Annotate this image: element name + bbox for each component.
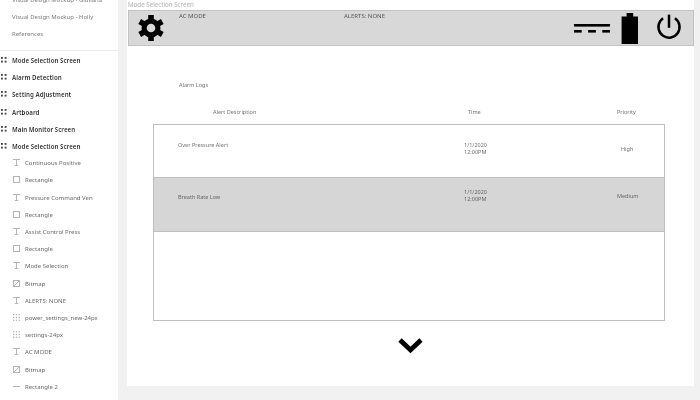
staticText: Breath Rate Low [178,193,221,200]
staticText: Rectangle 2 [25,383,58,391]
staticText: Time [468,108,481,115]
staticText: Assist Control Press [25,228,81,236]
staticText: Pressure Command Ven [25,194,93,202]
button[interactable]: Pressure line [574,22,610,34]
staticText: Alert Description [213,108,257,115]
button[interactable] [153,178,665,231]
staticText: Priority [617,108,636,115]
staticText: High [621,145,634,152]
staticText: 12:00PM [464,148,487,155]
button[interactable]: Assist Control Press [0,223,118,240]
button[interactable]: Bitmap [0,361,118,378]
staticText: AC MODE [179,12,206,20]
staticText: Alarm Logs [179,81,209,88]
staticText: Rectangle [25,211,53,219]
button[interactable]: References [0,25,118,42]
staticText: Continuous Positive [25,159,81,167]
staticText: Visual Design Mockup - Giuliana [12,0,103,4]
button[interactable]: ALERTS: NONE [0,292,118,309]
staticText: settings-24px [25,331,63,339]
staticText: Over Pressure Alert [178,141,229,148]
staticText: ALERTS: NONE [25,297,66,305]
button[interactable]: Settings [138,15,164,41]
button[interactable]: Artboard [0,103,118,120]
button[interactable]: Bitmap [0,275,118,292]
staticText: ALERTS: NONE [344,12,385,20]
button[interactable]: AC MODE [0,343,118,360]
button[interactable]: settings-24px [0,326,118,343]
staticText: Mode Selection Screen [12,56,81,64]
button[interactable]: Main Monitor Screen [0,120,118,137]
staticText: Alarm Detection [12,73,62,81]
staticText: Rectangle [25,176,53,184]
button[interactable]: Alarm Detection [0,68,118,85]
button[interactable]: Mode Selection [0,257,118,274]
button[interactable]: Continuous Positive [0,154,118,171]
staticText: Mode Selection Screen [12,142,81,150]
button[interactable]: Expand [395,334,425,356]
button[interactable]: Setting Adjustment [0,85,118,102]
staticText: power_settings_new-24px [25,314,98,322]
button[interactable]: Visual Design Mockup - Holly [0,8,118,25]
staticText: Rectangle [25,245,53,253]
staticText: Bitmap [25,366,46,374]
staticText: Bitmap [25,280,46,288]
staticText: Medium [617,192,639,199]
staticText: Mode Selection [25,262,69,270]
staticText: Main Monitor Screen [12,125,76,133]
button[interactable]: Visual Design Mockup - Giuliana [0,0,118,8]
button[interactable]: power_settings_new-24px [0,309,118,326]
button[interactable]: Power [657,14,681,38]
button[interactable]: Mode Selection Screen [0,137,118,154]
staticText: References [12,30,44,38]
staticText: Visual Design Mockup - Holly [12,13,94,21]
staticText: Setting Adjustment [12,90,72,98]
button[interactable]: Rectangle 2 [0,378,118,395]
button[interactable]: Rectangle [0,171,118,188]
button[interactable]: Battery [620,12,640,45]
button[interactable]: Pressure Command Ven [0,189,118,206]
staticText: Artboard [12,108,40,116]
button[interactable]: Mode Selection Screen [0,51,118,68]
staticText: 12:00PM [464,195,487,202]
staticText: 1/1/2020 [464,188,487,195]
button[interactable]: Rectangle [0,206,118,223]
button[interactable]: Rectangle [0,240,118,257]
staticText: Mode Selection Screen [128,0,194,8]
staticText: 1/1/2020 [464,141,487,148]
staticText: AC MODE [25,348,52,356]
